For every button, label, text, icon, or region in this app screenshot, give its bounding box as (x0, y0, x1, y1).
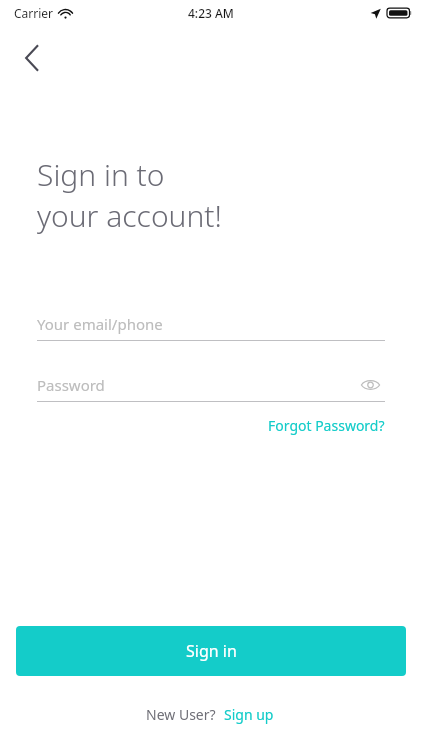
staticText: Forgot Password? (268, 416, 385, 435)
button[interactable]: Show password (355, 370, 385, 400)
button[interactable]: Sign up (222, 701, 276, 728)
staticText: Your email/phone (37, 314, 163, 334)
button[interactable]: Password (37, 375, 355, 395)
staticText: Password (37, 375, 105, 395)
staticText: Sign in (186, 640, 237, 662)
staticText: Carrier (14, 5, 54, 21)
staticText: Sign in to (37, 154, 165, 195)
button[interactable]: Forgot Password? (266, 412, 387, 439)
button[interactable]: Sign in (16, 626, 406, 676)
staticText: New User? (146, 705, 216, 724)
staticText: Sign up (224, 705, 274, 724)
button[interactable]: Your email/phone (37, 308, 385, 341)
button[interactable]: Back (8, 34, 56, 82)
staticText: your account! (37, 195, 222, 236)
staticText: 4:23 AM (188, 5, 234, 21)
